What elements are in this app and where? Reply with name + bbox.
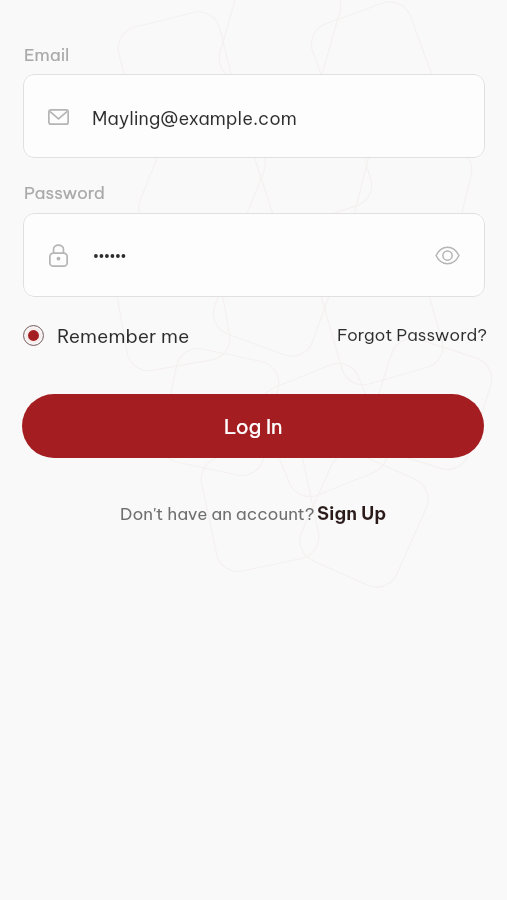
- button[interactable]: Log In: [22, 394, 484, 458]
- staticText: Email: [24, 44, 70, 66]
- button[interactable]: Mayling@example.com: [23, 74, 485, 158]
- staticText: Remember me: [57, 324, 190, 346]
- staticText: Password: [24, 182, 105, 204]
- button[interactable]: Show password: [423, 231, 471, 279]
- button[interactable]: Forgot Password?: [337, 324, 487, 346]
- button[interactable]: Sign Up: [317, 502, 387, 525]
- staticText: Log In: [224, 414, 283, 439]
- button[interactable]: Remember me: [23, 324, 190, 346]
- button[interactable]: Show password: [23, 213, 485, 297]
- staticText: Mayling@example.com: [92, 107, 297, 130]
- staticText: Don't have an account?: [120, 503, 315, 525]
